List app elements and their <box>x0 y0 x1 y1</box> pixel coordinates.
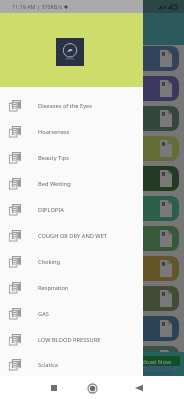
button[interactable]: Home <box>82 378 102 398</box>
staticText: Download Now <box>128 358 171 366</box>
button[interactable] <box>5 76 179 101</box>
staticText: Bed Wetting <box>38 180 71 188</box>
button[interactable] <box>5 316 179 341</box>
staticText: Sciatica <box>38 361 58 369</box>
button[interactable]: DIPLOPIA <box>0 197 143 223</box>
staticText: Diseases of the Eyes <box>38 102 93 110</box>
button[interactable] <box>5 46 179 71</box>
button[interactable] <box>5 286 179 311</box>
button[interactable]: Hoarseness <box>0 119 143 145</box>
staticText: Choking <box>38 258 61 266</box>
button[interactable]: Diseases of the Eyes <box>0 93 143 119</box>
staticText: Beauty Tips <box>38 154 69 162</box>
staticText: LOW BLOOD PRESSURE <box>38 336 101 344</box>
button[interactable] <box>5 106 179 131</box>
staticText: 11:19 AM | 370KB/s <box>12 3 62 10</box>
button[interactable] <box>5 166 179 191</box>
button[interactable]: Download Now <box>0 352 184 376</box>
staticText: COUGH OR DRY AND WET <box>38 232 107 240</box>
staticText: DIPLOPIA <box>38 206 64 214</box>
staticText: Respiration <box>38 284 69 292</box>
button[interactable]: Recents <box>44 378 64 398</box>
button[interactable]: Choking <box>0 249 143 275</box>
button[interactable] <box>5 346 179 371</box>
button[interactable] <box>5 196 179 221</box>
button[interactable] <box>5 136 179 161</box>
button[interactable]: Beauty Tips <box>0 145 143 171</box>
button[interactable]: LOW BLOOD PRESSURE <box>0 327 143 353</box>
staticText: Hoarseness <box>38 128 70 136</box>
button[interactable]: Back <box>129 378 149 398</box>
button[interactable] <box>5 226 179 251</box>
button[interactable]: Sciatica <box>0 353 143 376</box>
button[interactable]: Respiration <box>0 275 143 301</box>
button[interactable]: Bed Wetting <box>0 171 143 197</box>
button[interactable]: COUGH OR DRY AND WET <box>0 223 143 249</box>
button[interactable] <box>5 256 179 281</box>
button[interactable]: GAS <box>0 301 143 327</box>
staticText: GAS <box>38 310 49 318</box>
